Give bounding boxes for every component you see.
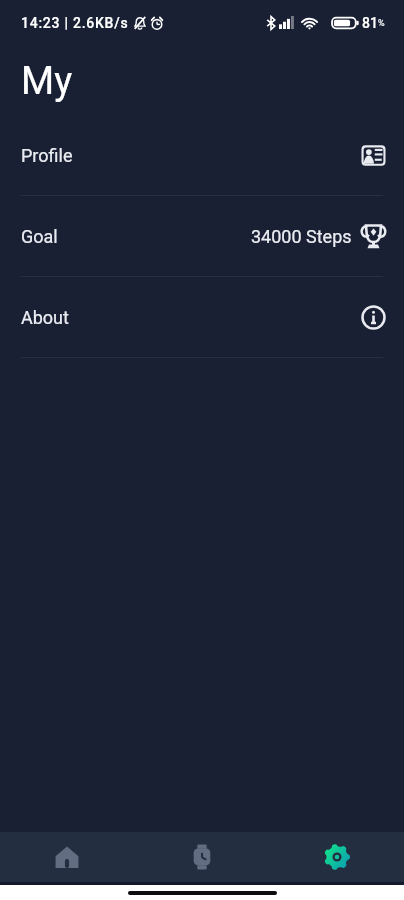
button[interactable]: Devices [134, 832, 269, 882]
staticText: 34000 Steps [251, 226, 352, 247]
button[interactable]: Settings [269, 832, 404, 882]
staticText: About [21, 307, 69, 328]
button[interactable]: About [0, 277, 404, 357]
button[interactable]: Goal [0, 196, 404, 276]
staticText: 14:23 | 2.6KB/s [21, 15, 129, 31]
staticText: % [378, 18, 385, 29]
staticText: My [21, 59, 73, 104]
staticText: Goal [21, 226, 58, 247]
staticText: Profile [21, 145, 73, 166]
staticText: 81 [362, 15, 378, 31]
button[interactable]: Home [0, 832, 134, 882]
button[interactable]: Profile [0, 115, 404, 195]
